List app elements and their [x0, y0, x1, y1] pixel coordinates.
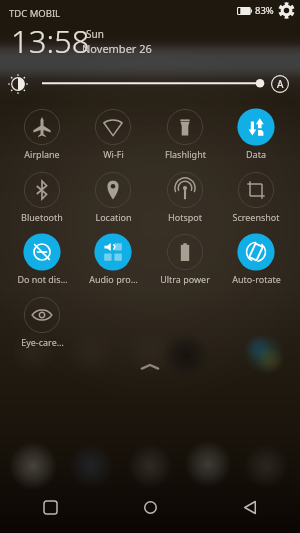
- button[interactable]: Bluetooth: [12, 171, 72, 223]
- button[interactable]: Wi-Fi: [83, 108, 143, 160]
- staticText: Wi-Fi: [103, 148, 124, 160]
- staticText: Do not dis…: [17, 273, 68, 285]
- staticText: Hotspot: [168, 211, 202, 223]
- staticText: Screenshot: [232, 211, 280, 223]
- button[interactable]: Home: [100, 487, 200, 527]
- button[interactable]: Recents: [0, 487, 100, 527]
- button[interactable]: Auto brightness: [271, 75, 289, 93]
- staticText: Flashlight: [165, 148, 206, 160]
- staticText: Data: [246, 148, 266, 160]
- button[interactable]: Location: [83, 171, 143, 223]
- staticText: November 26: [82, 41, 152, 56]
- button[interactable]: Eye-care…: [12, 296, 72, 348]
- staticText: Eye-care…: [21, 336, 64, 348]
- button[interactable]: Brightness: [7, 73, 29, 95]
- button[interactable]: Flashlight: [155, 108, 215, 160]
- staticText: Location: [95, 211, 132, 223]
- staticText: Ultra power: [160, 273, 210, 285]
- button[interactable]: Settings: [278, 2, 295, 19]
- staticText: A: [277, 77, 284, 91]
- staticText: Auto-rotate: [232, 273, 281, 285]
- staticText: TDC MOBIL: [9, 7, 61, 20]
- button[interactable]: Ultra power: [155, 233, 215, 285]
- button[interactable]: Back: [200, 487, 300, 527]
- button[interactable]: Airplane: [12, 108, 72, 160]
- staticText: 83%: [255, 4, 274, 17]
- staticText: Audio pro…: [89, 273, 138, 285]
- staticText: 13:58: [11, 20, 90, 62]
- button[interactable]: Collapse: [140, 360, 160, 372]
- button[interactable]: Hotspot: [155, 171, 215, 223]
- button[interactable]: Audio pro…: [83, 233, 143, 285]
- button[interactable]: Do not dis…: [12, 233, 72, 285]
- button[interactable]: Auto-rotate: [226, 233, 286, 285]
- staticText: Sun: [86, 27, 104, 41]
- staticText: Airplane: [24, 148, 60, 160]
- staticText: Bluetooth: [21, 211, 63, 223]
- button[interactable]: Screenshot: [226, 171, 286, 223]
- button[interactable]: Data: [226, 108, 286, 160]
